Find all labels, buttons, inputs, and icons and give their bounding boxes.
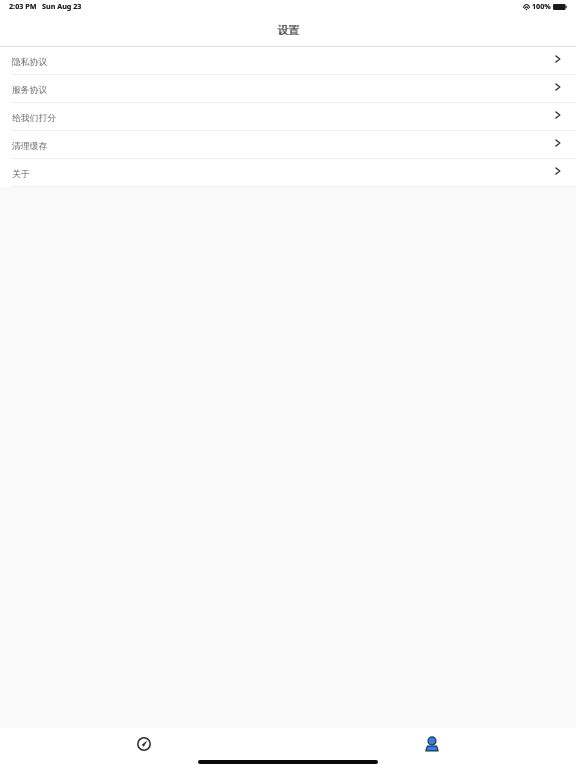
staticText: 给我们打分 <box>12 113 56 124</box>
button[interactable]: 给我们打分 <box>0 103 576 130</box>
staticText: 100% <box>532 1 551 11</box>
staticText: 关于 <box>12 169 30 180</box>
button[interactable]: Discover <box>0 728 288 759</box>
button[interactable]: 服务协议 <box>0 75 576 102</box>
staticText: Sun Aug 23 <box>42 1 82 11</box>
button[interactable]: 隐私协议 <box>0 47 576 74</box>
staticText: 设置 <box>278 23 300 37</box>
button[interactable]: Profile <box>288 728 576 759</box>
staticText: 2:03 PM <box>9 1 37 11</box>
staticText: Sun Aug 23 <box>42 1 82 11</box>
staticText: 服务协议 <box>12 85 48 96</box>
staticText: 清理缓存 <box>12 141 48 152</box>
staticText: 100% <box>532 1 551 11</box>
button[interactable]: 清理缓存 <box>0 131 576 158</box>
staticText: 2:03 PM <box>9 1 37 11</box>
button[interactable]: 关于 <box>0 159 576 186</box>
staticText: 设置 <box>277 23 299 37</box>
staticText: 隐私协议 <box>12 57 48 68</box>
